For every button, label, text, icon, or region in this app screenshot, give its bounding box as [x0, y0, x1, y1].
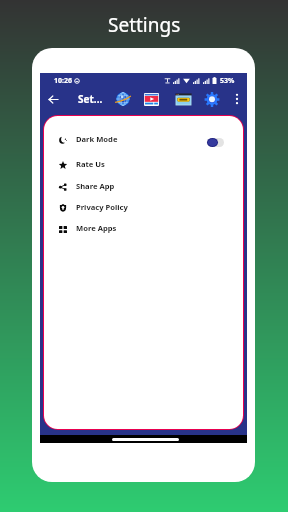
button[interactable]: Language	[116, 92, 130, 106]
button[interactable]: Rate Us	[44, 156, 243, 176]
staticText: Set...	[78, 92, 103, 106]
staticText: Privacy Policy	[76, 202, 128, 212]
button[interactable]: Dark Mode	[44, 131, 243, 151]
button[interactable]: Privacy Policy	[44, 199, 243, 219]
button[interactable]: Back	[48, 94, 59, 105]
button[interactable]: Share App	[44, 178, 243, 198]
button[interactable]: Watch video	[144, 93, 159, 106]
staticText: More Apps	[76, 223, 117, 233]
staticText: Settings	[108, 12, 181, 38]
staticText: 53%	[220, 76, 235, 86]
staticText: Share App	[76, 181, 115, 191]
staticText: Dark Mode	[76, 134, 118, 144]
staticText: Rate Us	[76, 159, 105, 169]
button[interactable]: More Apps	[44, 220, 243, 240]
staticText: 10:26	[54, 76, 72, 86]
button[interactable]: Advertisement	[175, 93, 192, 106]
button[interactable]: Settings	[204, 92, 220, 107]
button[interactable]: More options	[233, 92, 241, 106]
